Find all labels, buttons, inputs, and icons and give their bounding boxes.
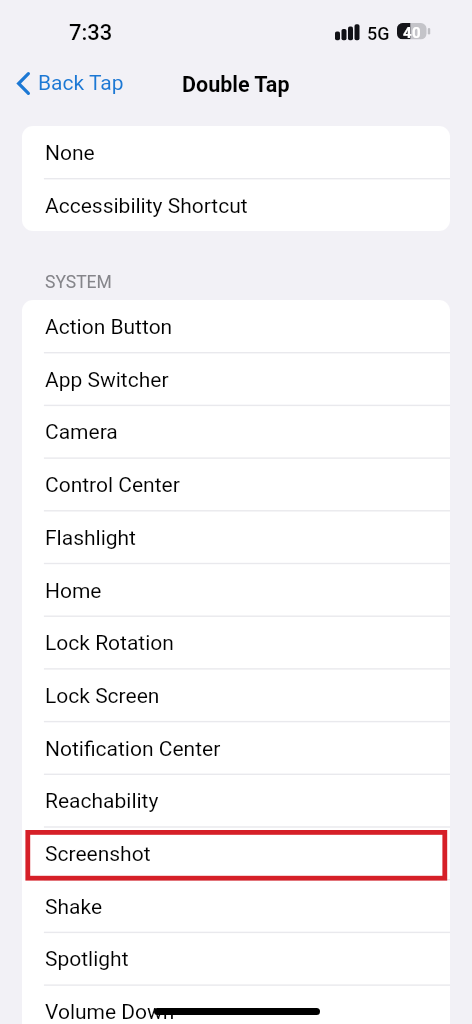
button[interactable]: Screenshot [22,827,450,880]
button[interactable]: App Switcher [22,353,450,406]
staticText: Control Center [45,473,180,498]
staticText: 40 [403,24,422,41]
staticText: Back Tap [38,71,124,96]
staticText: Camera [45,420,118,445]
staticText: Reachability [45,789,159,814]
staticText: 7:33 [69,20,113,46]
button[interactable]: Control Center [22,458,450,511]
button[interactable]: Back to Back Tap [10,67,134,100]
staticText: Screenshot [45,842,151,867]
button[interactable]: Home [22,564,450,617]
button[interactable]: Flashlight [22,511,450,564]
button[interactable]: Lock Rotation [22,616,450,669]
button[interactable]: None [22,126,450,179]
staticText: Double Tap [182,72,290,97]
staticText: Accessibility Shortcut [45,194,248,219]
staticText: App Switcher [45,368,169,393]
staticText: None [45,141,95,166]
button[interactable]: Shake [22,880,450,933]
staticText: Shake [45,895,103,920]
button[interactable]: Action Button [22,300,450,353]
button[interactable]: Camera [22,405,450,458]
staticText: 5G [367,23,390,44]
button[interactable]: Notification Center [22,722,450,775]
staticText: Volume Down [45,1000,175,1024]
button[interactable]: Accessibility Shortcut [22,179,450,231]
staticText: SYSTEM [45,272,112,293]
button[interactable]: Spotlight [22,932,450,985]
staticText: Flashlight [45,526,136,551]
staticText: Lock Rotation [45,631,174,656]
staticText: Lock Screen [45,684,160,709]
staticText: Spotlight [45,947,129,972]
button[interactable]: Reachability [22,774,450,827]
button[interactable]: Lock Screen [22,669,450,722]
button[interactable]: Volume Down [22,985,450,1024]
staticText: Action Button [45,315,173,340]
staticText: Notification Center [45,737,221,762]
staticText: Home [45,579,102,604]
